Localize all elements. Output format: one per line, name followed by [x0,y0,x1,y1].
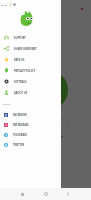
staticText: FACEBOOK [13,113,27,117]
button[interactable]: SETTINGS [0,76,61,87]
button[interactable]: Connect [28,70,68,110]
button[interactable]: Recents [13,188,31,200]
button[interactable]: ABOUT US [0,87,61,98]
staticText: TWITTER [13,143,25,147]
staticText: RATE US [14,58,25,62]
button[interactable] [23,119,68,132]
button[interactable]: SUPPORT [0,32,61,43]
button[interactable]: RATE US [0,54,61,65]
staticText: ABOUT US [14,91,28,95]
button[interactable]: Home [37,188,54,200]
button[interactable]: TELEGRAM [0,130,61,140]
staticText: SOCIAL [3,103,11,106]
staticText: SUPPORT [14,36,26,40]
staticText: PRIVACY POLICY [14,69,36,73]
staticText: 16:37 [1,3,8,6]
button[interactable]: SHARE GREENNET [0,43,61,54]
staticText: SETTINGS [14,80,27,84]
staticText: TELEGRAM [13,133,27,137]
staticText: SHARE GREENNET [14,47,37,51]
button[interactable]: Back [59,188,77,200]
button[interactable]: FACEBOOK [0,110,61,120]
button[interactable]: INSTAGRAM [0,120,61,130]
staticText: INSTAGRAM [13,123,29,127]
button[interactable]: TWITTER [0,140,61,150]
button[interactable]: PRIVACY POLICY [0,65,61,76]
